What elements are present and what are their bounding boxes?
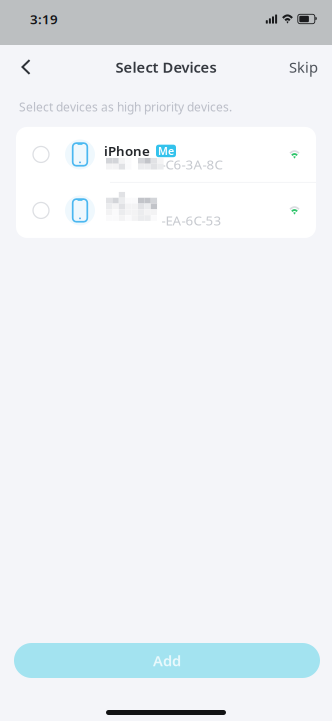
staticText: -C6-3A-8C bbox=[161, 156, 222, 173]
button[interactable]: Back bbox=[6, 45, 46, 89]
staticText: Me bbox=[158, 144, 174, 158]
button[interactable]: iPhone bbox=[16, 127, 316, 182]
staticText: Add bbox=[153, 651, 181, 670]
staticText: Select Devices bbox=[115, 57, 216, 77]
staticText: iPhone bbox=[104, 142, 150, 160]
button[interactable]: -EA-6C-53 bbox=[16, 183, 316, 238]
staticText: -EA-6C-53 bbox=[161, 212, 221, 229]
staticText: 3:19 bbox=[30, 10, 58, 28]
button[interactable]: Add bbox=[14, 643, 320, 678]
staticText: Select devices as high priority devices. bbox=[19, 99, 232, 115]
button[interactable]: Skip bbox=[274, 45, 318, 89]
staticText: Skip bbox=[289, 57, 318, 77]
